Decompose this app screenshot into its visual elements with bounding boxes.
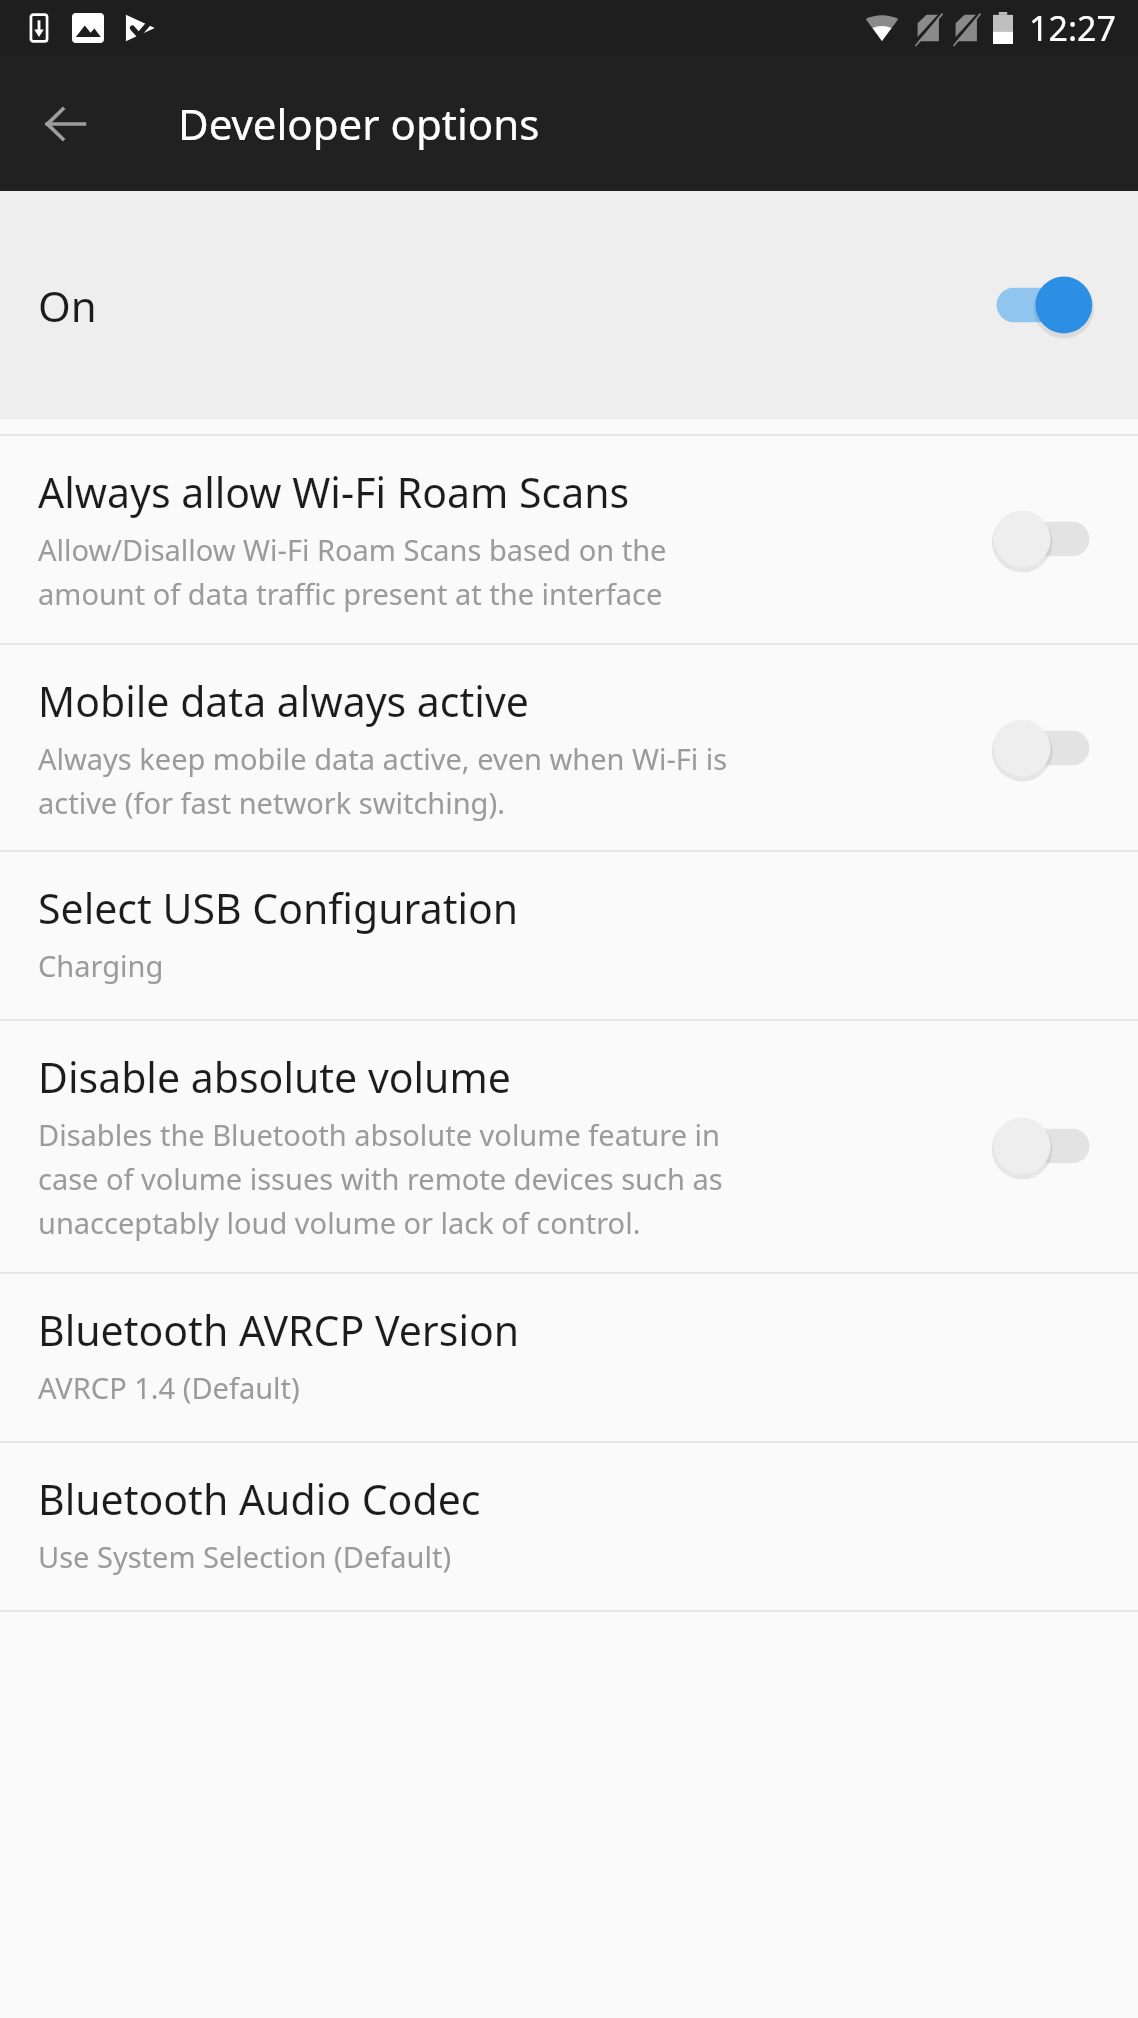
button[interactable]: Bluetooth AVRCP Version: [0, 1274, 1138, 1441]
staticText: 12:27: [1029, 5, 1116, 51]
staticText: amount of data traffic present at the in…: [38, 574, 663, 613]
staticText: On: [38, 277, 982, 334]
staticText: Use System Selection (Default): [38, 1537, 452, 1576]
staticText: Bluetooth AVRCP Version: [38, 1302, 520, 1358]
staticText: Always keep mobile data active, even whe…: [38, 739, 728, 778]
button[interactable]: Disable absolute volume: [0, 1021, 1138, 1272]
staticText: Bluetooth Audio Codec: [38, 1471, 481, 1527]
staticText: Allow/Disallow Wi-Fi Roam Scans based on…: [38, 530, 667, 569]
staticText: Developer options: [178, 95, 540, 152]
button[interactable]: Mobile data always active: [0, 645, 1138, 850]
staticText: Disables the Bluetooth absolute volume f…: [38, 1115, 720, 1154]
staticText: Disable absolute volume: [38, 1049, 511, 1105]
staticText: Select USB Configuration: [38, 880, 519, 936]
staticText: Charging: [38, 946, 164, 985]
staticText: unacceptably loud volume or lack of cont…: [38, 1203, 641, 1242]
button[interactable]: On: [0, 191, 1138, 419]
staticText: AVRCP 1.4 (Default): [38, 1368, 300, 1407]
button[interactable]: Always allow Wi-Fi Roam Scans: [0, 436, 1138, 643]
button[interactable]: Back: [22, 81, 108, 167]
button[interactable]: Bluetooth Audio Codec: [0, 1443, 1138, 1610]
staticText: Always allow Wi-Fi Roam Scans: [38, 464, 630, 520]
staticText: case of volume issues with remote device…: [38, 1159, 723, 1198]
staticText: Mobile data always active: [38, 673, 529, 729]
button[interactable]: Select USB Configuration: [0, 852, 1138, 1019]
staticText: active (for fast network switching).: [38, 783, 505, 822]
